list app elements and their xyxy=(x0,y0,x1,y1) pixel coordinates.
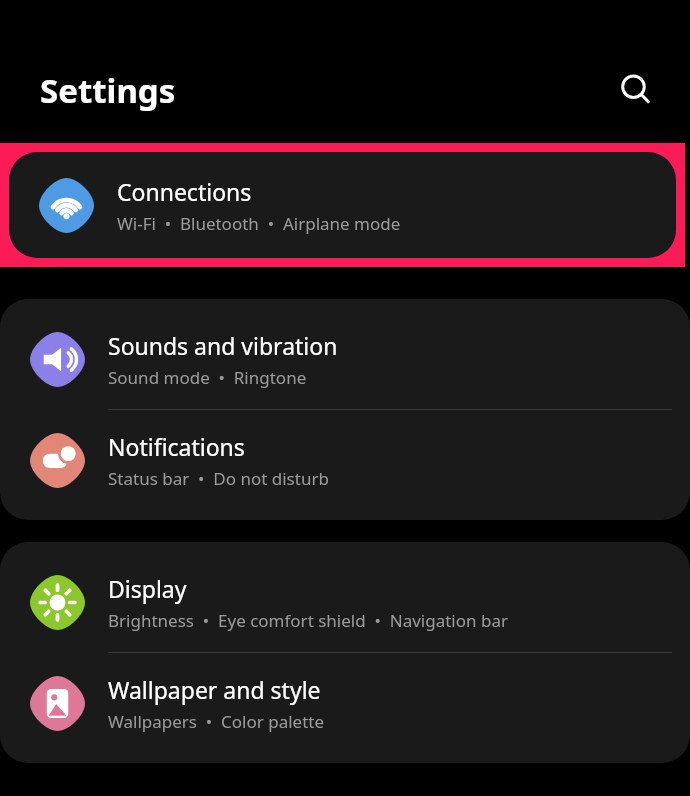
staticText: Notifications xyxy=(108,431,245,462)
staticText: Sound mode • Ringtone xyxy=(108,366,307,389)
button[interactable]: Display xyxy=(0,552,690,652)
button[interactable]: Notifications xyxy=(0,410,690,510)
staticText: Display xyxy=(108,573,187,604)
staticText: Wallpapers • Color palette xyxy=(108,710,325,733)
staticText: Sounds and vibration xyxy=(108,330,338,361)
staticText: Connections xyxy=(117,176,252,207)
button[interactable]: Wallpaper and style xyxy=(0,653,690,753)
button[interactable]: Sounds and vibration xyxy=(0,309,690,409)
staticText: Settings xyxy=(40,68,176,113)
button[interactable]: Search xyxy=(612,66,660,114)
staticText: Brightness • Eye comfort shield • Naviga… xyxy=(108,609,508,632)
staticText: Wallpaper and style xyxy=(108,674,321,705)
button[interactable]: Connections xyxy=(9,152,676,258)
staticText: Wi-Fi • Bluetooth • Airplane mode xyxy=(117,212,401,235)
staticText: Status bar • Do not disturb xyxy=(108,467,329,490)
